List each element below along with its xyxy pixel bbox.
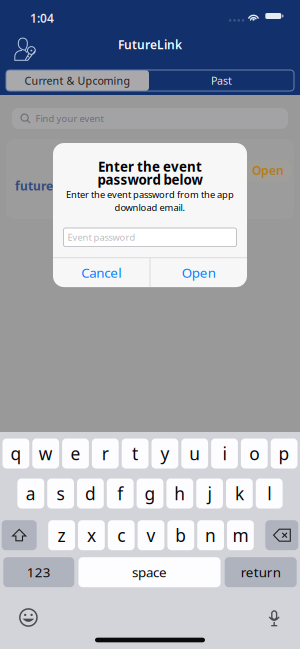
button[interactable]: Dictation — [258, 602, 300, 633]
button[interactable]: f — [107, 478, 134, 508]
button[interactable]: s — [47, 478, 74, 508]
staticText: j — [208, 482, 212, 505]
staticText: p — [279, 442, 290, 465]
button[interactable]: v — [138, 520, 164, 550]
button[interactable]: u — [181, 438, 208, 468]
staticText: q — [10, 442, 21, 465]
staticText: y — [160, 442, 169, 465]
staticText: Find your event — [35, 112, 103, 125]
staticText: h — [174, 482, 185, 505]
button[interactable]: d — [77, 478, 104, 508]
button[interactable]: z — [48, 520, 75, 550]
button[interactable]: k — [226, 478, 253, 508]
staticText: g — [144, 482, 155, 505]
staticText: futurelink — [15, 178, 76, 194]
staticText: r — [102, 442, 109, 465]
button[interactable]: a — [17, 478, 44, 508]
staticText: Enter the event password from the app — [66, 188, 234, 201]
staticText: z — [58, 524, 66, 547]
staticText: Event password — [67, 231, 135, 243]
staticText: k — [235, 482, 244, 505]
staticText: Enter the event — [98, 158, 202, 175]
staticText: w — [39, 442, 53, 465]
staticText: space — [132, 563, 167, 581]
button[interactable]: l — [256, 478, 283, 508]
button[interactable]: space — [78, 557, 220, 587]
staticText: Cancel — [81, 264, 121, 281]
button[interactable]: w — [32, 438, 59, 468]
staticText: e — [70, 442, 80, 465]
button[interactable]: e — [62, 438, 89, 468]
button[interactable]: n — [197, 520, 224, 550]
button[interactable]: Open — [150, 258, 247, 287]
button[interactable]: t — [122, 438, 148, 468]
button[interactable]: i — [211, 438, 238, 468]
staticText: FutureLink — [118, 36, 182, 52]
staticText: x — [87, 524, 96, 547]
button[interactable]: Shift — [2, 520, 37, 550]
staticText: b — [175, 524, 186, 547]
button[interactable]: Delete — [265, 520, 298, 550]
staticText: Past — [211, 73, 232, 88]
staticText: d — [85, 482, 96, 505]
staticText: n — [205, 524, 216, 547]
staticText: l — [267, 482, 271, 505]
button[interactable]: o — [241, 438, 268, 468]
button[interactable]: c — [108, 520, 135, 550]
button[interactable]: Current & Upcoming — [6, 70, 149, 91]
button[interactable]: q — [2, 438, 29, 468]
staticText: Open — [252, 162, 284, 178]
button[interactable]: return — [225, 557, 297, 587]
button[interactable]: Account — [0, 23, 44, 66]
button[interactable]: m — [227, 520, 254, 550]
staticText: i — [222, 442, 226, 465]
staticText: s — [57, 482, 65, 505]
staticText: u — [189, 442, 200, 465]
staticText: download email. — [114, 201, 185, 214]
staticText: c — [117, 524, 125, 547]
staticText: o — [249, 442, 259, 465]
staticText: a — [26, 482, 36, 505]
button[interactable]: g — [137, 478, 163, 508]
staticText: Current & Upcoming — [24, 73, 130, 88]
staticText: password below — [97, 171, 202, 188]
staticText: m — [232, 524, 248, 547]
button[interactable]: x — [78, 520, 105, 550]
staticText: f — [117, 482, 123, 505]
button[interactable]: j — [196, 478, 223, 508]
button[interactable]: b — [167, 520, 194, 550]
button[interactable]: y — [151, 438, 178, 468]
button[interactable]: Cancel — [53, 258, 150, 287]
staticText: t — [132, 442, 138, 465]
staticText: Open — [182, 264, 216, 281]
staticText: 1:04 — [30, 10, 54, 26]
button[interactable]: r — [92, 438, 119, 468]
staticText: return — [241, 563, 281, 581]
button[interactable]: Past — [149, 70, 294, 91]
staticText: v — [146, 524, 155, 547]
button[interactable]: p — [271, 438, 297, 468]
button[interactable]: Emoji — [0, 602, 48, 633]
button[interactable]: 123 — [3, 557, 74, 587]
staticText: 123 — [27, 563, 51, 581]
button[interactable]: h — [166, 478, 193, 508]
